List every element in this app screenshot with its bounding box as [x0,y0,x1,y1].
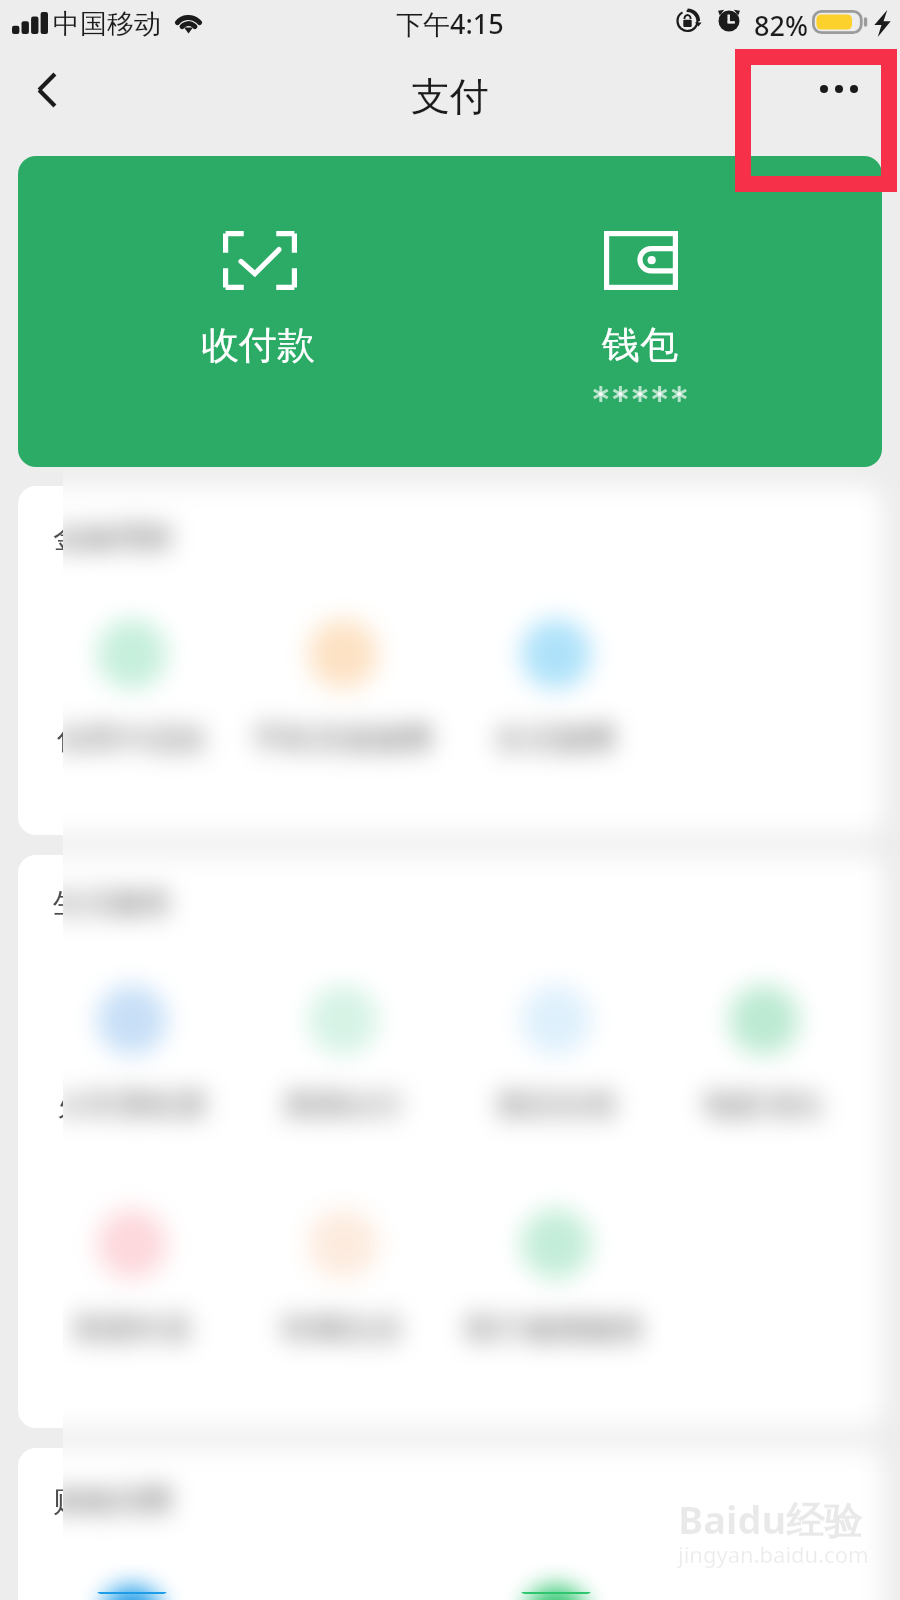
staticText: 火车票机票 [57,1086,63,1124]
staticText: 吃喝玩乐 [283,1310,403,1348]
staticText: 金融理财 [53,519,173,557]
button[interactable]: 收付款 [18,156,450,467]
staticText: 信用卡还款 [57,720,63,758]
button[interactable]: 酒店住宿 [451,973,661,1133]
staticText: 购物消费 [53,1482,173,1520]
button[interactable]: Back [2,43,92,137]
staticText: 滴滴出行 [283,1086,403,1124]
button[interactable]: 信用卡还款 [27,607,63,767]
staticText: 下午4:15 [396,5,504,42]
button[interactable]: 吃喝玩乐 [238,1197,448,1357]
staticText: 钱包 [602,321,678,369]
staticText: 手机充值缴费 [253,720,433,758]
button[interactable]: 生活缴费 [451,607,661,767]
button[interactable]: 火车票机票 [27,973,63,1133]
button[interactable] [451,1574,661,1600]
staticText: 中国移动 [53,7,161,41]
staticText: 酒店住宿 [496,1086,616,1124]
staticText: 金融理财 [53,519,63,557]
button[interactable]: 美团外卖 [27,1197,237,1357]
button[interactable]: More options [795,42,883,136]
staticText: 生活服务 [53,884,173,922]
button[interactable]: 医疗健康服务 [451,1197,661,1357]
staticText: 电影演出 [704,1086,824,1124]
staticText: 信用卡还款 [57,720,207,758]
staticText: 生活缴费 [496,720,616,758]
staticText: 购物消费 [53,1482,63,1520]
button[interactable]: 手机充值缴费 [238,607,448,767]
staticText: 火车票机票 [57,1086,207,1124]
staticText: 82% [754,7,808,44]
button[interactable]: 电影演出 [659,973,869,1133]
staticText: 生活服务 [53,884,63,922]
button[interactable]: 滴滴出行 [238,973,448,1133]
button[interactable]: 钱包 [450,156,882,467]
staticText: 支付 [411,72,489,121]
staticText: 收付款 [201,321,315,369]
button[interactable] [27,1574,237,1600]
button[interactable]: 火车票机票 [27,973,237,1133]
button[interactable]: 信用卡还款 [27,607,237,767]
staticText: 医疗健康服务 [466,1310,646,1348]
staticText: 美团外卖 [72,1310,192,1348]
staticText: jingyan.baidu.com [678,1539,869,1569]
staticText: Baidu经验 [678,1493,863,1545]
